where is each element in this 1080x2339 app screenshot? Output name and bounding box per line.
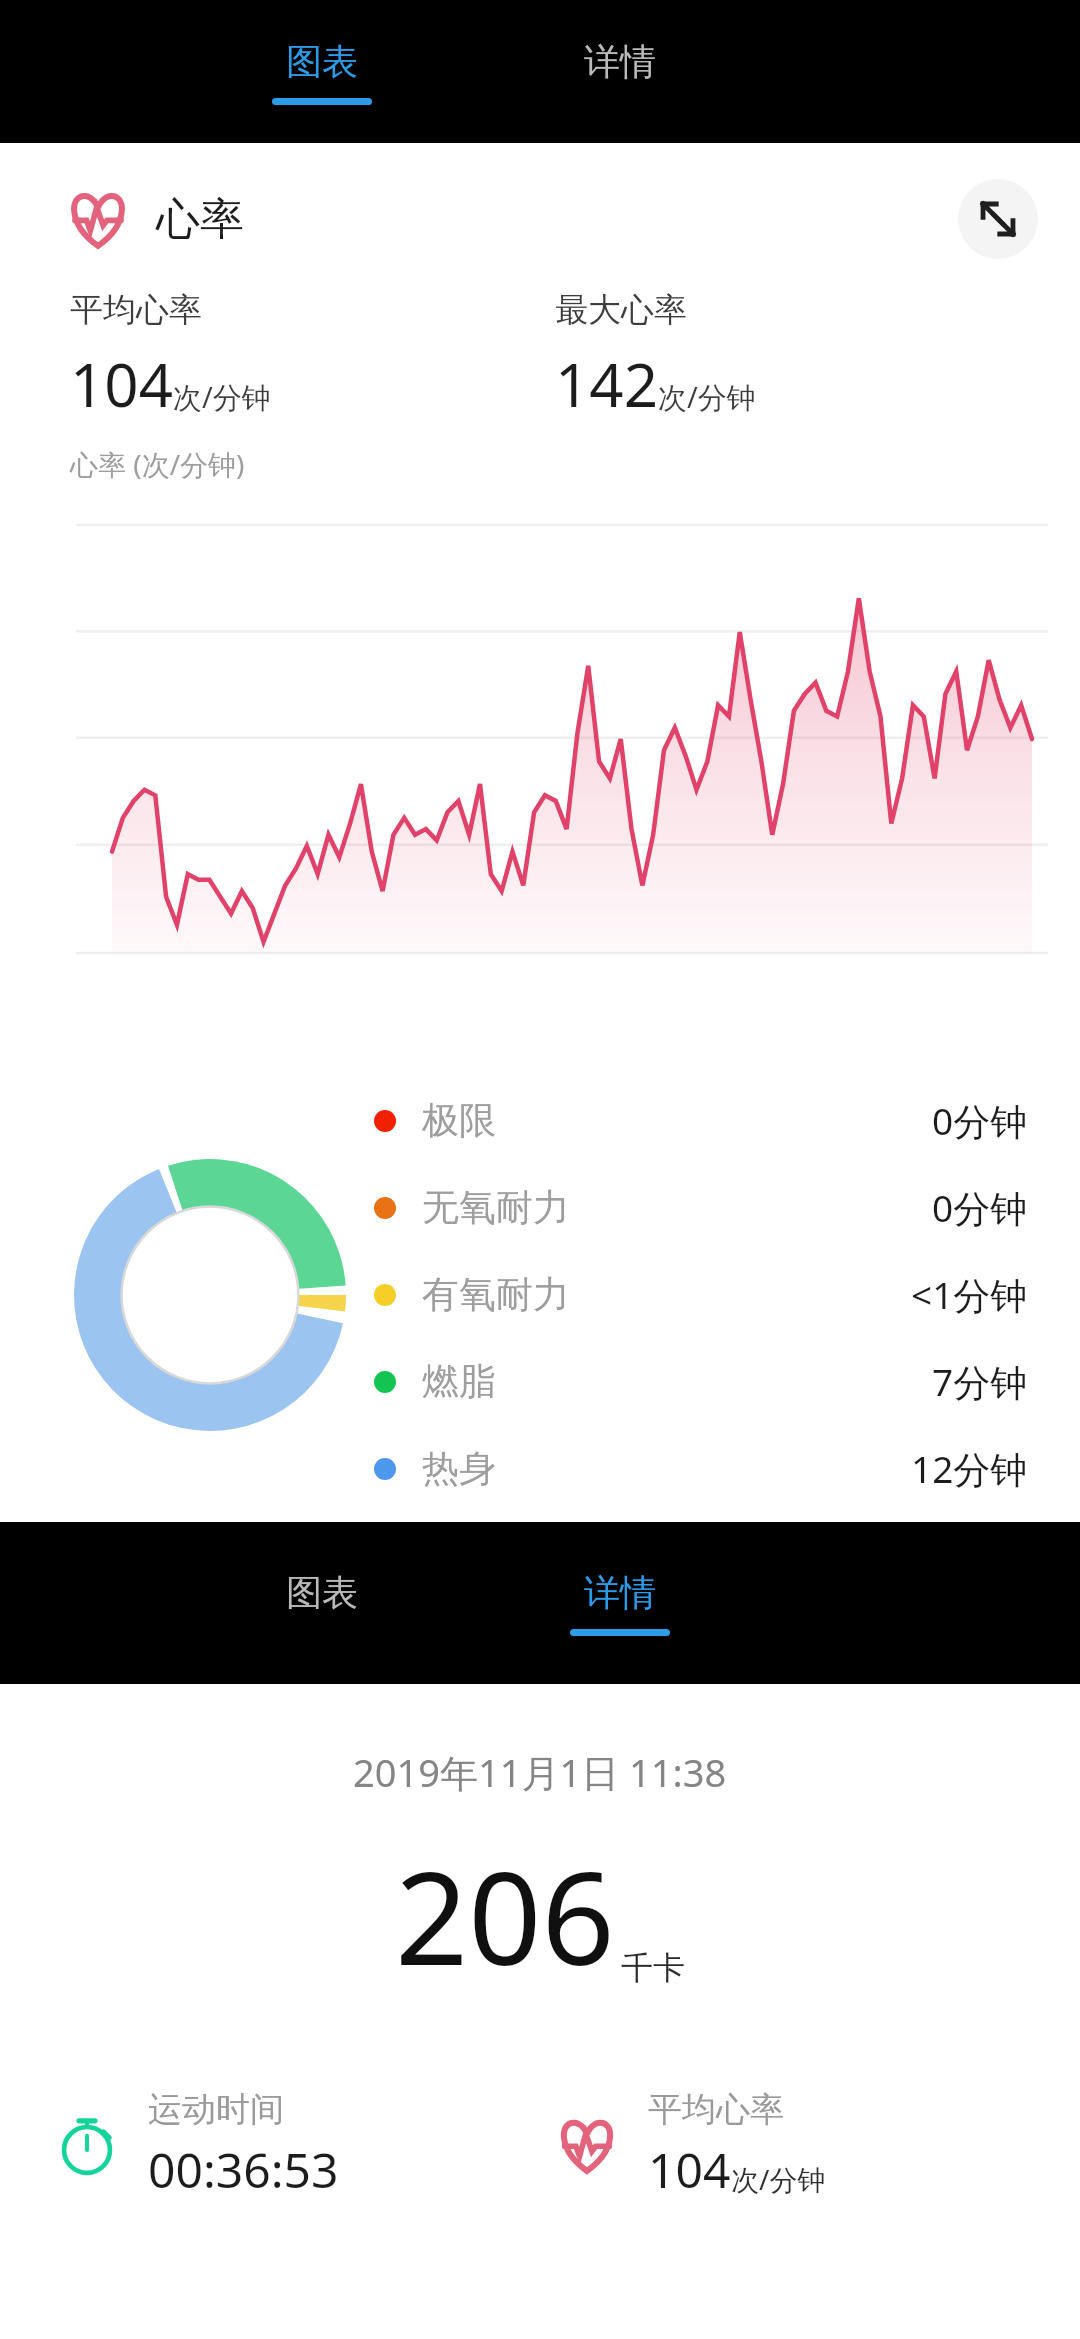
staticText: 详情 xyxy=(584,39,656,84)
button[interactable]: 图表 xyxy=(246,35,398,109)
button[interactable]: 无氧耐力 xyxy=(374,1164,1028,1251)
staticText: 无氧耐力 xyxy=(422,1184,570,1231)
button[interactable]: 平均心率 xyxy=(556,2088,1056,2202)
staticText: <1分钟 xyxy=(911,1269,1028,1320)
button[interactable]: 有氧耐力 xyxy=(374,1251,1028,1338)
staticText: 平均心率 xyxy=(648,2088,784,2131)
staticText: 平均心率 xyxy=(70,289,202,331)
button[interactable]: 燃脂 xyxy=(374,1338,1028,1425)
staticText: 0分钟 xyxy=(932,1182,1028,1233)
staticText: 104 xyxy=(70,343,173,425)
staticText: 12分钟 xyxy=(911,1443,1028,1494)
button[interactable]: 热身 xyxy=(374,1425,1028,1512)
staticText: 详情 xyxy=(584,1570,656,1615)
staticText: 最大心率 xyxy=(555,289,687,331)
staticText: 有氧耐力 xyxy=(422,1271,570,1318)
staticText: 7分钟 xyxy=(932,1356,1028,1407)
button[interactable]: 详情 xyxy=(544,35,696,109)
button[interactable]: Expand chart xyxy=(958,179,1038,259)
button[interactable]: 运动时间 xyxy=(56,2088,556,2202)
staticText: 次/分钟 xyxy=(731,2160,826,2198)
staticText: 00:36:53 xyxy=(148,2137,339,2202)
staticText: 次/分钟 xyxy=(658,377,756,417)
staticText: 图表 xyxy=(286,1570,358,1615)
button[interactable]: 图表 xyxy=(246,1566,398,1640)
staticText: 104 xyxy=(648,2137,731,2202)
staticText: 图表 xyxy=(286,39,358,84)
staticText: 次/分钟 xyxy=(173,377,271,417)
staticText: 热身 xyxy=(422,1445,496,1492)
button[interactable]: 详情 xyxy=(544,1566,696,1640)
staticText: 极限 xyxy=(422,1097,496,1144)
staticText: 心率 xyxy=(156,192,244,247)
button[interactable]: 极限 xyxy=(374,1077,1028,1164)
staticText: 142 xyxy=(555,343,658,425)
staticText: 心率 (次/分钟) xyxy=(70,445,245,483)
staticText: 206 xyxy=(395,1828,615,2002)
staticText: 千卡 xyxy=(621,1948,685,1988)
staticText: 燃脂 xyxy=(422,1358,496,1405)
staticText: 2019年11月1日 11:38 xyxy=(353,1746,727,1798)
staticText: 0分钟 xyxy=(932,1095,1028,1146)
staticText: 运动时间 xyxy=(148,2088,284,2131)
